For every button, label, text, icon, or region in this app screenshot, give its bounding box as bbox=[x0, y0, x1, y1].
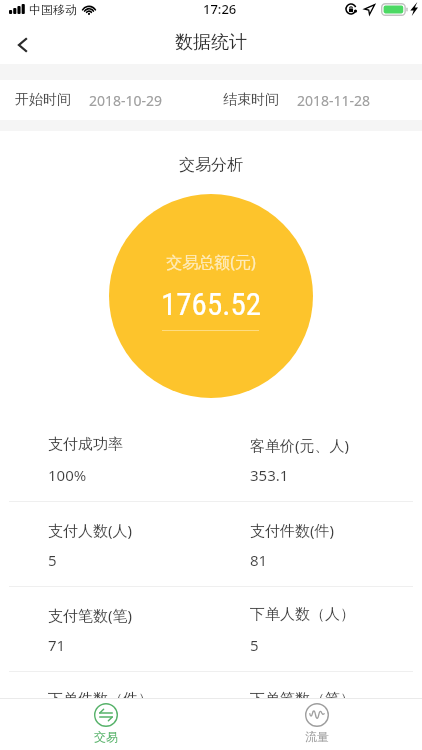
button[interactable]: Back bbox=[0, 26, 44, 64]
staticText: 支付笔数(笔) bbox=[48, 605, 133, 625]
staticText: 下单件数（件） bbox=[48, 690, 153, 709]
staticText: 17:26 bbox=[203, 0, 237, 18]
button[interactable]: 开始时间 bbox=[15, 80, 195, 120]
button[interactable]: 流量 bbox=[211, 698, 422, 750]
staticText: 支付人数(人) bbox=[48, 520, 133, 540]
staticText: 2018-11-28 bbox=[297, 91, 371, 110]
staticText: 5 bbox=[250, 635, 259, 655]
staticText: 交易总额(元) bbox=[109, 251, 313, 273]
staticText: 支付件数(件) bbox=[250, 520, 335, 540]
button[interactable]: 结束时间 bbox=[223, 80, 407, 120]
staticText: 下单笔数（笔） bbox=[250, 690, 355, 709]
button[interactable]: 交易 bbox=[0, 698, 211, 750]
staticText: 流量 bbox=[305, 729, 329, 744]
staticText: 下单人数（人） bbox=[250, 605, 355, 624]
staticText: 客单价(元、人) bbox=[250, 435, 350, 455]
staticText: 支付成功率 bbox=[48, 435, 123, 454]
staticText: 71 bbox=[48, 635, 66, 655]
staticText: 81 bbox=[250, 550, 268, 570]
staticText: 开始时间 bbox=[15, 91, 71, 109]
staticText: 100% bbox=[48, 465, 87, 485]
staticText: 中国移动 bbox=[29, 2, 77, 17]
staticText: 1765.52 bbox=[109, 286, 313, 322]
staticText: 数据统计 bbox=[0, 31, 422, 54]
staticText: 2018-10-29 bbox=[89, 91, 163, 110]
staticText: 交易 bbox=[94, 729, 118, 744]
staticText: 交易分析 bbox=[0, 155, 422, 175]
staticText: 5 bbox=[48, 550, 57, 570]
staticText: 结束时间 bbox=[223, 91, 279, 109]
staticText: 353.1 bbox=[250, 465, 289, 485]
